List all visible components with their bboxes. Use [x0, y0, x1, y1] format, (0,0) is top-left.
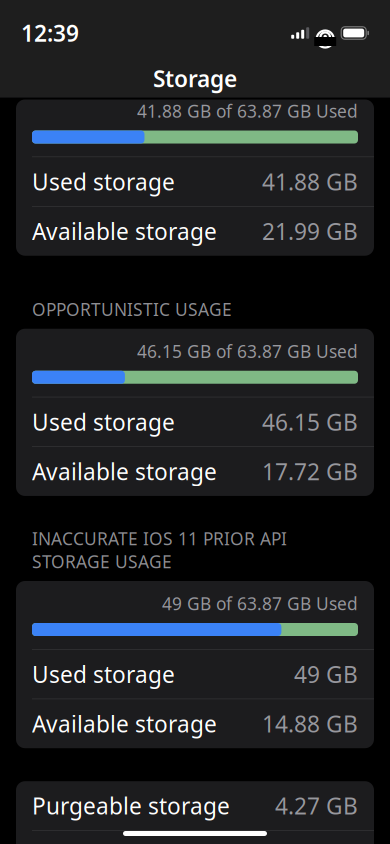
staticText: 46.15 GB	[262, 407, 358, 437]
button[interactable]: Used storage	[16, 157, 374, 206]
staticText: 12:39	[21, 18, 79, 48]
staticText: Used storage	[32, 407, 175, 437]
button[interactable]: Available storage	[16, 699, 374, 748]
staticText: 17.72 GB	[262, 456, 358, 486]
button[interactable]: Used storage	[16, 650, 374, 699]
staticText: INACCURATE IOS 11 PRIOR API STORAGE USAG…	[32, 527, 287, 573]
button[interactable]: Available storage	[16, 447, 374, 496]
staticText: 46.15 GB of 63.87 GB Used	[137, 340, 358, 363]
staticText: Available storage	[32, 216, 217, 246]
staticText: 21.99 GB	[262, 216, 358, 246]
staticText: OPPORTUNISTIC USAGE	[32, 298, 232, 321]
staticText: 41.88 GB of 63.87 GB Used	[137, 99, 358, 122]
staticText: Storage	[153, 63, 237, 93]
staticText: Available storage	[32, 456, 217, 486]
staticText: Purgeable storage	[32, 791, 230, 821]
staticText: 4.27 GB	[275, 791, 358, 821]
staticText: 41.88 GB	[262, 167, 358, 197]
staticText: Used storage	[32, 659, 175, 689]
staticText: 14.88 GB	[262, 709, 358, 739]
staticText: Used storage	[32, 167, 175, 197]
button[interactable]: Purgeable storage	[16, 781, 374, 830]
staticText: 49 GB	[294, 659, 358, 689]
staticText: 49 GB of 63.87 GB Used	[162, 592, 358, 615]
button[interactable]: Available storage	[16, 207, 374, 256]
staticText: Available storage	[32, 709, 217, 739]
button[interactable]: Used storage	[16, 397, 374, 446]
button[interactable]: Total storage	[16, 831, 374, 844]
